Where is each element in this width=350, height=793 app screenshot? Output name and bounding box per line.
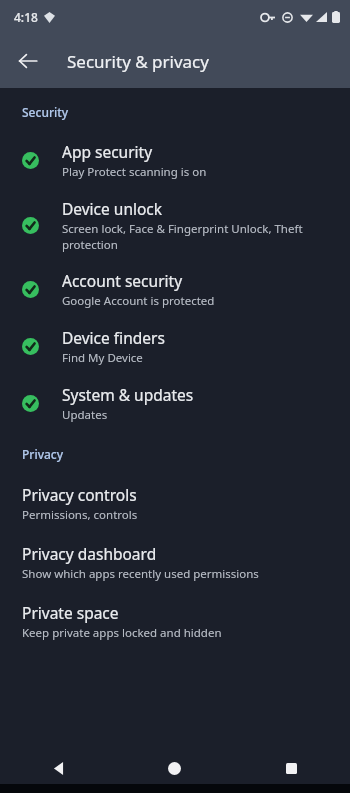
staticText: System & updates [62,384,194,405]
staticText: Device finders [62,327,165,348]
staticText: Account security [62,270,183,291]
staticText: Updates [62,407,108,423]
button[interactable]: Account security [0,261,350,318]
button[interactable]: Recent apps [233,752,350,784]
button[interactable]: System & updates [0,375,350,432]
button[interactable]: Device finders [0,318,350,375]
staticText: Google Account is protected [62,293,215,309]
button[interactable]: App security [0,132,350,189]
staticText: Keep private apps locked and hidden [22,625,222,641]
staticText: Find My Device [62,350,143,366]
staticText: Show which apps recently used permission… [22,566,259,582]
button[interactable]: Device unlock [0,189,350,261]
staticText: Device unlock [62,198,163,219]
button[interactable]: Home [116,752,233,784]
button[interactable]: Privacy controls [0,474,350,533]
button[interactable]: Back [0,752,116,784]
staticText: Security & privacy [67,50,209,73]
button[interactable]: Back [8,41,48,81]
staticText: Play Protect scanning is on [62,164,207,180]
staticText: App security [62,141,153,162]
button[interactable]: Privacy dashboard [0,533,350,592]
staticText: Security [22,104,69,120]
staticText: Permissions, controls [22,507,138,523]
staticText: Screen lock, Face & Fingerprint Unlock, … [62,221,332,252]
staticText: Private space [22,602,119,623]
staticText: Privacy [22,446,64,462]
button[interactable]: Private space [0,592,350,651]
staticText: Privacy controls [22,484,137,505]
staticText: Privacy dashboard [22,543,157,564]
staticText: 4:18 [14,9,38,25]
